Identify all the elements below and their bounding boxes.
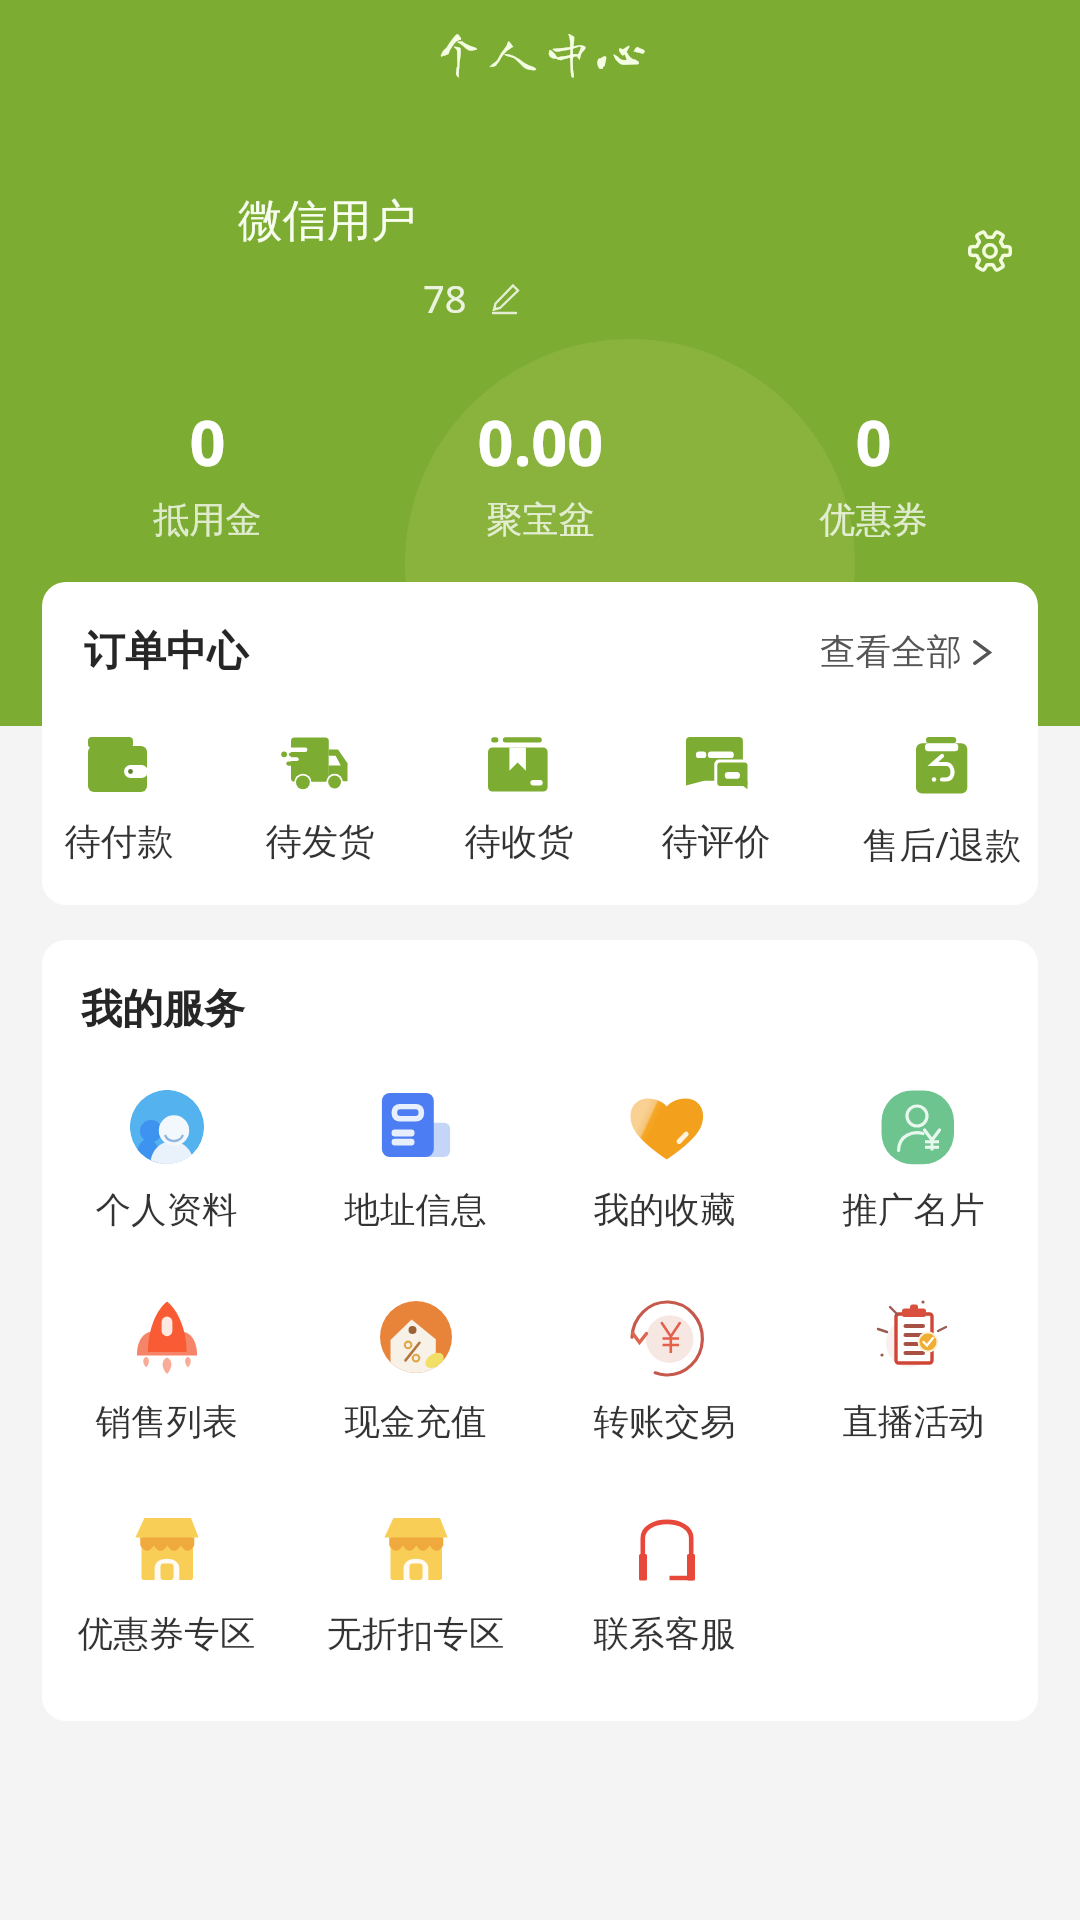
button[interactable]: 推广名片: [789, 1087, 1038, 1247]
staticText: 微信用户: [238, 193, 416, 249]
staticText: 转账交易: [540, 1400, 789, 1445]
staticText: 0: [707, 399, 1040, 485]
staticText: 无折扣专区: [291, 1612, 540, 1657]
staticText: 抵用金: [41, 497, 374, 542]
staticText: 个人资料: [42, 1188, 291, 1233]
button[interactable]: 直播活动: [789, 1299, 1038, 1459]
button[interactable]: 78: [410, 266, 538, 324]
staticText: 优惠券: [707, 497, 1040, 542]
staticText: 我的收藏: [540, 1188, 789, 1233]
button[interactable]: 优惠券专区: [42, 1511, 291, 1671]
button[interactable]: 0: [41, 390, 374, 540]
button[interactable]: 转账交易: [540, 1299, 789, 1459]
button[interactable]: 我的收藏: [540, 1087, 789, 1247]
button[interactable]: 个人资料: [42, 1087, 291, 1247]
staticText: 推广名片: [789, 1188, 1038, 1233]
button[interactable]: 待付款: [42, 732, 204, 852]
staticText: 现金充值: [291, 1400, 540, 1445]
staticText: 销售列表: [42, 1400, 291, 1445]
button[interactable]: 联系客服: [540, 1511, 789, 1671]
button[interactable]: 销售列表: [42, 1299, 291, 1459]
button[interactable]: 待评价: [631, 732, 801, 852]
button[interactable]: 地址信息: [291, 1087, 540, 1247]
button[interactable]: 无折扣专区: [291, 1511, 540, 1671]
staticText: 查看全部: [820, 630, 962, 675]
button[interactable]: 待收货: [434, 732, 604, 852]
button[interactable]: 待发货: [235, 732, 405, 852]
staticText: 聚宝盆: [374, 497, 707, 542]
button[interactable]: 0.00: [374, 390, 707, 540]
button[interactable]: Settings: [967, 228, 1013, 274]
staticText: 优惠券专区: [42, 1612, 291, 1657]
staticText: 0.00: [374, 399, 707, 485]
staticText: 待评价: [631, 819, 801, 865]
staticText: 待发货: [235, 819, 405, 865]
staticText: 售后/退款: [857, 819, 1027, 869]
button[interactable]: 售后/退款: [857, 732, 1027, 852]
button[interactable]: 现金充值: [291, 1299, 540, 1459]
staticText: 78: [423, 272, 467, 324]
staticText: 待收货: [434, 819, 604, 865]
button[interactable]: 0: [707, 390, 1040, 540]
staticText: 0: [41, 399, 374, 485]
staticText: 待付款: [42, 819, 204, 865]
button[interactable]: 查看全部: [809, 618, 1038, 676]
staticText: 个人中心: [0, 24, 1080, 78]
staticText: 订单中心: [84, 626, 248, 678]
staticText: 我的服务: [81, 984, 245, 1036]
button[interactable]: 微信用户: [225, 180, 455, 252]
staticText: 地址信息: [291, 1188, 540, 1233]
staticText: 直播活动: [789, 1400, 1038, 1445]
staticText: 联系客服: [540, 1612, 789, 1657]
